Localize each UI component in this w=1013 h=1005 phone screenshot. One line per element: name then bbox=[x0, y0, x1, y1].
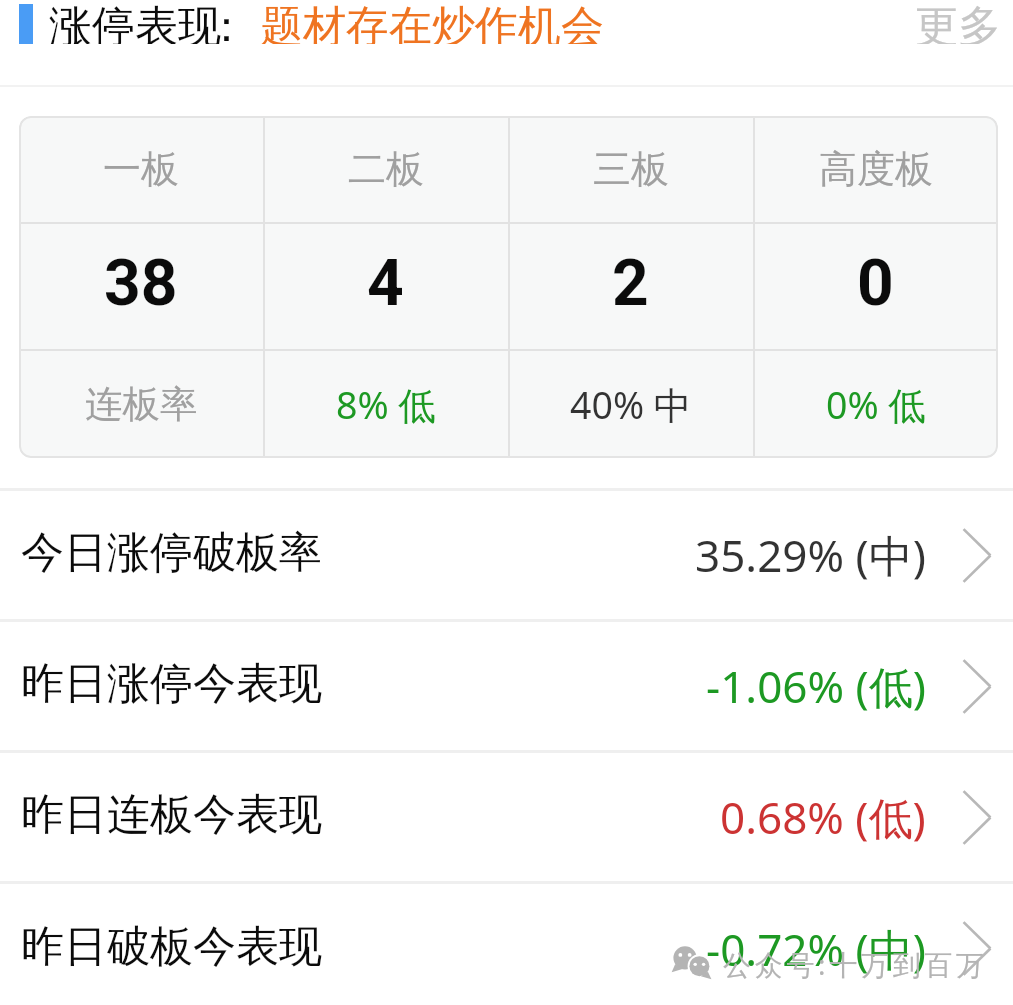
button[interactable]: 今日涨停破板率 bbox=[0, 491, 1013, 619]
staticText: 涨停表现 bbox=[49, 0, 221, 44]
staticText: 公众号:十万到百万 bbox=[723, 945, 988, 983]
button[interactable]: 昨日破板今表现 bbox=[0, 884, 1013, 1005]
other: Open details bbox=[963, 790, 991, 845]
staticText: 2 bbox=[612, 246, 649, 321]
other: Open details bbox=[963, 659, 991, 714]
staticText: -1.06% (低) bbox=[706, 656, 926, 716]
staticText: 0% 低 bbox=[826, 379, 926, 430]
staticText: ： bbox=[205, 0, 248, 44]
staticText: 昨日涨停今表现 bbox=[21, 657, 322, 711]
staticText: -0.72% (中) bbox=[706, 919, 926, 979]
staticText: 今日涨停破板率 bbox=[21, 526, 322, 580]
other: Open details bbox=[963, 921, 991, 976]
staticText: 40% 中 bbox=[570, 379, 692, 430]
button[interactable]: 更多 bbox=[907, 0, 1009, 44]
staticText: 4 bbox=[367, 246, 404, 321]
staticText: 连板率 bbox=[85, 381, 198, 428]
staticText: 38 bbox=[104, 246, 178, 321]
other: Open details bbox=[963, 528, 991, 583]
staticText: 昨日连板今表现 bbox=[21, 788, 322, 842]
button[interactable]: 昨日涨停今表现 bbox=[0, 622, 1013, 750]
staticText: 昨日破板今表现 bbox=[21, 920, 322, 974]
staticText: 更多 bbox=[915, 0, 1001, 44]
staticText: 35.29% (中) bbox=[695, 525, 926, 585]
button[interactable]: 昨日连板今表现 bbox=[0, 753, 1013, 881]
staticText: 0 bbox=[857, 246, 894, 321]
staticText: 0.68% (低) bbox=[720, 787, 926, 847]
staticText: 一板 bbox=[103, 145, 179, 193]
staticText: 8% 低 bbox=[336, 379, 436, 430]
staticText: 二板 bbox=[348, 145, 424, 193]
staticText: 题材存在炒作机会 bbox=[260, 0, 604, 44]
staticText: 三板 bbox=[593, 145, 669, 193]
staticText: 高度板 bbox=[819, 145, 933, 193]
